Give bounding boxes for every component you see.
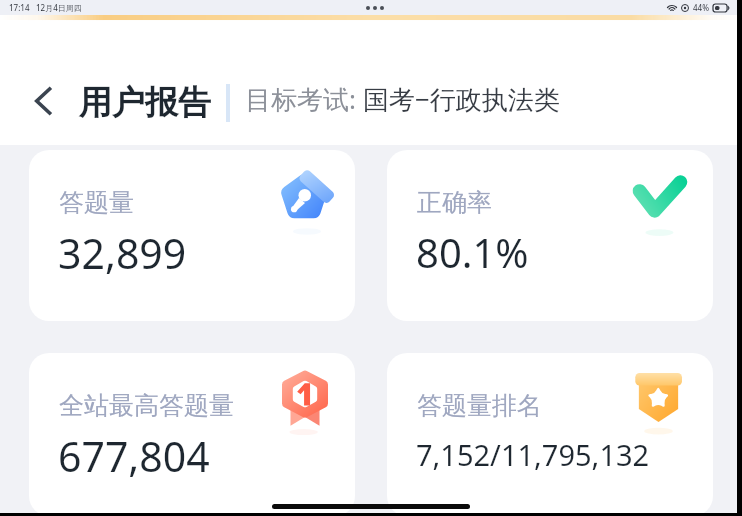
staticText: 答题量 [59, 187, 134, 218]
button[interactable]: 答题量 [29, 150, 355, 321]
staticText: 32,899 [58, 225, 187, 281]
staticText: 17:14 [9, 2, 30, 13]
staticText: 用户报告 [79, 82, 211, 124]
button[interactable]: 全站最高答题量 [29, 353, 355, 516]
staticText: 7,152/11,795,132 [416, 435, 650, 474]
staticText: 目标考试: [245, 81, 363, 117]
staticText: 44% [693, 2, 709, 13]
staticText: 12月4日周四 [36, 2, 82, 13]
button[interactable]: 正确率 [387, 150, 713, 321]
staticText: 677,804 [58, 428, 210, 484]
staticText: 国考−行政执法类 [363, 81, 560, 117]
button[interactable]: Back [24, 82, 62, 120]
staticText: 全站最高答题量 [59, 390, 234, 421]
button[interactable]: 答题量排名 [387, 353, 713, 516]
staticText: 答题量排名 [417, 390, 542, 421]
staticText: 正确率 [417, 187, 492, 218]
staticText: 80.1% [416, 225, 529, 279]
